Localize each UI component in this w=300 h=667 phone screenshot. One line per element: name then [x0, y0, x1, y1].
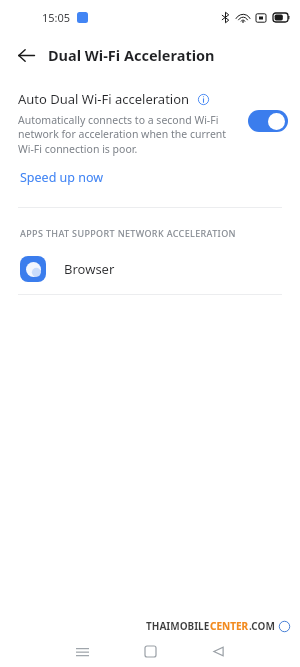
- button[interactable]: Auto Dual Wi-Fi acceleration: [0, 90, 300, 156]
- button[interactable]: Speed up now: [0, 166, 118, 189]
- button[interactable]: Auto Dual Wi-Fi acceleration: [248, 110, 288, 132]
- staticText: Automatically connects to a second Wi-Fi…: [18, 113, 234, 156]
- button[interactable]: Back: [204, 637, 232, 665]
- staticText: CENTER: [210, 619, 249, 633]
- button[interactable]: Browser: [0, 252, 300, 286]
- button[interactable]: Recent apps: [68, 637, 96, 665]
- button[interactable]: Info: [196, 92, 210, 106]
- staticText: THAIMOBILE: [146, 619, 210, 633]
- button[interactable]: Back: [10, 39, 42, 71]
- button[interactable]: Home: [136, 637, 164, 665]
- staticText: Auto Dual Wi-Fi acceleration: [18, 90, 190, 108]
- staticText: .COM: [249, 619, 275, 633]
- staticText: APPS THAT SUPPORT NETWORK ACCELERATION: [20, 227, 236, 239]
- staticText: 15:05: [42, 10, 71, 25]
- staticText: Dual Wi-Fi Acceleration: [48, 45, 215, 65]
- staticText: Speed up now: [20, 169, 104, 186]
- staticText: Browser: [64, 260, 115, 278]
